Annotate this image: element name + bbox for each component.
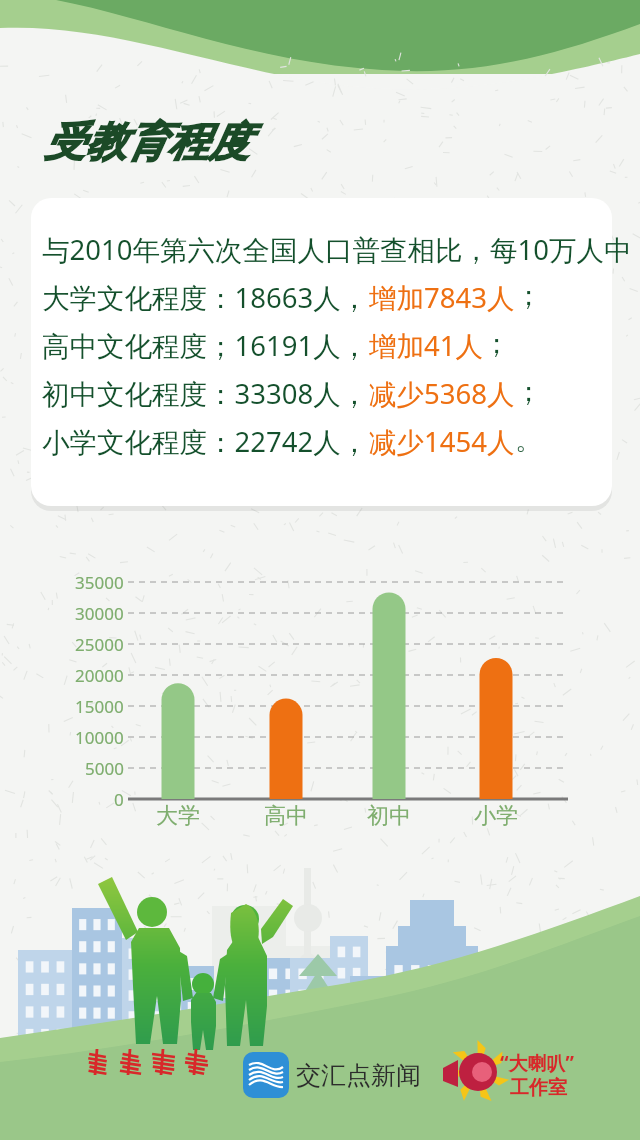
button[interactable]: 受教育程度 人口普查信息图 xyxy=(0,0,640,1140)
